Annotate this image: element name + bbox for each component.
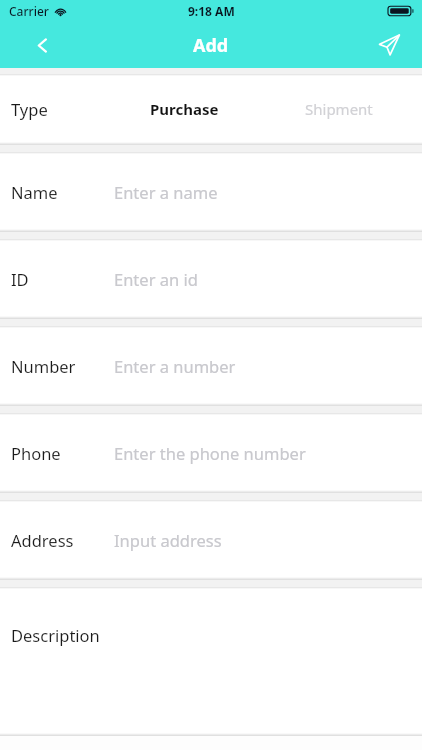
button[interactable]: Number	[0, 328, 422, 403]
staticText: Enter a number	[114, 355, 236, 377]
staticText: ID	[11, 268, 29, 290]
button[interactable]: Type	[0, 76, 422, 142]
staticText: Enter a name	[114, 181, 218, 203]
staticText: Carrier	[9, 3, 49, 19]
staticText: Add	[193, 33, 229, 58]
staticText: Enter the phone number	[114, 442, 306, 464]
staticText: Purchase	[150, 99, 219, 119]
button[interactable]: Back	[22, 25, 62, 65]
button[interactable]: Purchase	[135, 76, 240, 142]
staticText: Type	[11, 98, 48, 120]
button[interactable]: Send	[368, 24, 410, 66]
button[interactable]: Phone	[0, 415, 422, 490]
button[interactable]: Name	[0, 154, 422, 229]
staticText: Description	[11, 624, 100, 646]
button[interactable]: Shipment	[290, 76, 400, 142]
staticText: Enter an id	[114, 268, 198, 290]
staticText: Phone	[11, 442, 61, 464]
staticText: Shipment	[305, 99, 373, 119]
staticText: Number	[11, 355, 76, 377]
staticText: 9:18 AM	[188, 3, 235, 19]
staticText: Address	[11, 529, 74, 551]
button[interactable]: ID	[0, 241, 422, 316]
button[interactable]: Description	[0, 589, 422, 733]
staticText: Input address	[114, 529, 222, 551]
staticText: Name	[11, 181, 58, 203]
button[interactable]: Address	[0, 502, 422, 577]
